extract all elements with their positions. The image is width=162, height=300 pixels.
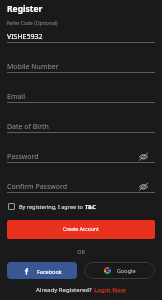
button[interactable]: Date of Birth	[7, 121, 155, 132]
staticText: VISHE5932	[7, 32, 43, 42]
button[interactable]: Toggle password visibility	[139, 181, 155, 192]
staticText: Mobile Number	[7, 62, 155, 72]
staticText: Date of Birth	[7, 122, 155, 132]
staticText: By registering, I agree to	[19, 203, 85, 210]
staticText: OR	[0, 248, 162, 255]
button[interactable]: Facebook	[7, 262, 77, 279]
staticText: T&C	[85, 203, 96, 210]
button[interactable]: Toggle password visibility	[139, 151, 155, 162]
staticText: Confirm Password	[7, 182, 139, 192]
button[interactable]: Mobile Number	[7, 61, 155, 72]
staticText: Email	[7, 92, 155, 102]
button[interactable]: Password	[7, 151, 155, 162]
button[interactable]: Create Account	[7, 220, 155, 239]
staticText: Already Registered?	[36, 286, 94, 294]
button[interactable]: Login Now	[94, 286, 126, 294]
button[interactable]: Google	[84, 262, 155, 279]
button[interactable]: Confirm Password	[7, 181, 155, 192]
staticText: Register	[7, 3, 43, 15]
button[interactable]: Email	[7, 91, 155, 102]
staticText: Google	[117, 267, 136, 274]
button[interactable]: By registering, I agree to	[8, 200, 96, 213]
staticText: Password	[7, 152, 139, 162]
staticText: Create Account	[63, 226, 99, 233]
staticText: Refer Code (Optional)	[7, 20, 58, 27]
staticText: Facebook	[37, 268, 62, 275]
